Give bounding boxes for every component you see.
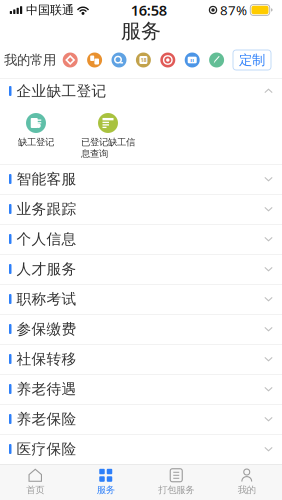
button[interactable]: Shortcut <box>131 50 156 70</box>
button[interactable]: 缺工登记 <box>0 104 72 164</box>
button[interactable]: 已登记缺工信息查询 <box>72 104 144 164</box>
button[interactable]: Shortcut <box>58 50 82 70</box>
staticText: ıı <box>190 56 194 64</box>
staticText: 养老待遇 <box>16 380 76 398</box>
button[interactable]: 定制 <box>233 50 271 70</box>
button[interactable]: Shortcut <box>82 50 107 70</box>
button[interactable]: 人才服务 <box>0 254 282 284</box>
staticText: 医疗保险 <box>16 440 76 458</box>
staticText: 首页 <box>26 484 44 496</box>
button[interactable]: 打包服务 <box>141 464 211 500</box>
staticText: 企业缺工登记 <box>16 82 106 100</box>
button[interactable]: Shortcut <box>204 50 229 70</box>
button[interactable]: 企业缺工登记 <box>0 78 282 104</box>
button[interactable]: 养老待遇 <box>0 374 282 404</box>
button[interactable]: 我的 <box>211 464 282 500</box>
button[interactable]: 首页 <box>0 464 70 500</box>
button[interactable]: 职称考试 <box>0 284 282 314</box>
button[interactable]: 参保缴费 <box>0 314 282 344</box>
button[interactable]: 医疗保险 <box>0 434 282 464</box>
staticText: 人才服务 <box>16 260 76 278</box>
staticText: 中国联通 <box>26 3 74 17</box>
staticText: 服务 <box>121 19 161 43</box>
staticText: 缺工登记 <box>18 136 54 148</box>
staticText: 职称考试 <box>16 290 76 308</box>
staticText: 智能客服 <box>16 170 76 188</box>
button[interactable]: Shortcut <box>156 50 180 70</box>
button[interactable]: 业务跟踪 <box>0 194 282 224</box>
staticText: 已登记缺工信息查询 <box>81 136 135 159</box>
staticText: 我的常用 <box>4 52 56 68</box>
staticText: 16:58 <box>131 0 167 20</box>
staticText: 社保转移 <box>16 350 76 368</box>
staticText: 我的 <box>238 484 256 496</box>
staticText: 87% <box>220 1 247 19</box>
button[interactable]: 社保转移 <box>0 344 282 374</box>
button[interactable]: 智能客服 <box>0 164 282 194</box>
staticText: 参保缴费 <box>16 320 76 338</box>
staticText: 打包服务 <box>158 484 194 496</box>
staticText: 服务 <box>97 484 115 496</box>
button[interactable]: 养老保险 <box>0 404 282 434</box>
staticText: 养老保险 <box>16 410 76 428</box>
staticText: 业务跟踪 <box>16 200 76 218</box>
button[interactable]: Shortcut <box>107 50 131 70</box>
staticText: 个人信息 <box>16 230 76 248</box>
staticText: 定制 <box>239 52 265 68</box>
staticText: 18 <box>140 56 146 64</box>
button[interactable]: 个人信息 <box>0 224 282 254</box>
button[interactable]: Shortcut <box>180 50 204 70</box>
button[interactable]: 服务 <box>70 464 141 500</box>
